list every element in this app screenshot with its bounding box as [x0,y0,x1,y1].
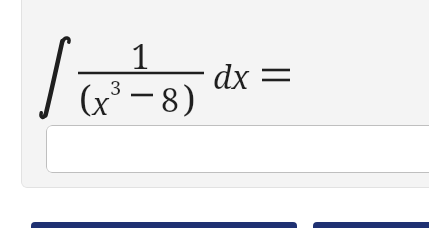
staticText: 1 [131,33,151,79]
button[interactable]: Answer input field [46,125,429,173]
button[interactable]: Secondary action [313,222,429,228]
staticText: 8 [161,78,179,122]
button[interactable]: Primary action [31,222,297,228]
staticText: x [92,82,109,124]
staticText: dx [213,55,250,99]
staticText: ( [79,74,92,123]
staticText: 3 [110,74,122,101]
staticText: ) [183,74,196,123]
